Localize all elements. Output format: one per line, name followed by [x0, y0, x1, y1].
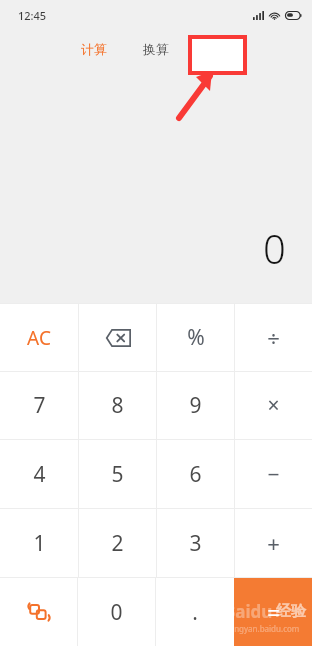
staticText: + — [267, 528, 280, 558]
staticText: 换算 — [143, 41, 169, 57]
button[interactable]: 2 — [79, 509, 156, 577]
button[interactable]: Equals — [234, 578, 312, 646]
button[interactable]: 1 — [0, 509, 78, 577]
staticText: ÷ — [267, 323, 280, 353]
staticText: % — [187, 323, 205, 352]
button[interactable]: × — [235, 372, 312, 439]
button[interactable]: 7 — [0, 372, 78, 439]
button[interactable]: . — [156, 578, 234, 646]
button[interactable]: Unit convert — [0, 578, 77, 646]
button[interactable]: 0 — [78, 578, 155, 646]
staticText: 8 — [111, 391, 124, 420]
button[interactable]: % — [157, 304, 234, 371]
button[interactable]: + — [235, 509, 312, 577]
staticText: × — [267, 391, 280, 420]
staticText: jingyan.baidu.com — [230, 623, 300, 634]
staticText: 3 — [189, 529, 202, 558]
button[interactable]: − — [235, 440, 312, 508]
button[interactable]: 9 — [157, 372, 234, 439]
staticText: 经验 — [276, 602, 306, 621]
staticText: − — [267, 460, 280, 489]
staticText: 2 — [111, 529, 124, 558]
staticText: 4 — [33, 460, 46, 489]
button[interactable]: 3 — [157, 509, 234, 577]
staticText: 0 — [110, 598, 123, 627]
button[interactable]: AC — [0, 304, 78, 371]
button[interactable]: 8 — [79, 372, 156, 439]
button[interactable]: Backspace — [79, 304, 156, 371]
staticText: 6 — [189, 460, 202, 489]
staticText: 12:45 — [18, 8, 47, 23]
staticText: 7 — [33, 391, 46, 420]
staticText: 5 — [111, 460, 124, 489]
staticText: 计算 — [81, 41, 107, 57]
button[interactable]: 税贷 — [198, 36, 238, 62]
button[interactable]: 换算 — [136, 36, 176, 62]
staticText: Baidu — [224, 600, 273, 623]
staticText: 0 — [263, 221, 286, 275]
button[interactable]: 计算 — [74, 36, 114, 62]
staticText: = — [267, 597, 280, 627]
button[interactable]: 5 — [79, 440, 156, 508]
staticText: 9 — [189, 391, 202, 420]
staticText: 1 — [33, 529, 46, 558]
staticText: . — [192, 598, 198, 627]
staticText: AC — [27, 325, 51, 351]
button[interactable]: 6 — [157, 440, 234, 508]
button[interactable]: ÷ — [235, 304, 312, 371]
button[interactable]: 4 — [0, 440, 78, 508]
